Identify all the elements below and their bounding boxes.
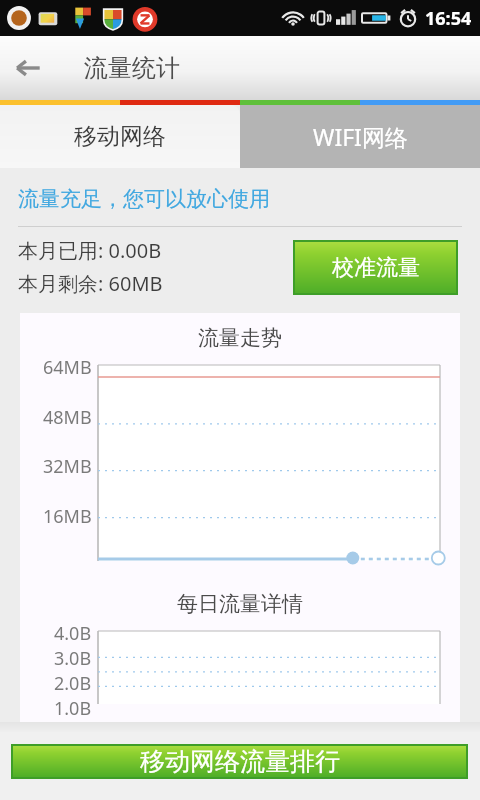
button[interactable]: 校准流量 [295,242,456,293]
staticText: 校准流量 [332,254,420,282]
staticText: 流量充足，您可以放心使用 [18,186,270,212]
button[interactable]: WIFI网络 [240,105,480,168]
staticText: 流量走势 [198,325,282,351]
staticText: 2.0B [54,671,92,696]
staticText: 64MB [43,355,92,380]
staticText: 本月已用: 0.00B [18,237,162,264]
staticText: 移动网络 [74,122,166,151]
button[interactable]: 移动网络流量排行 [13,746,466,777]
staticText: 1.0B [54,696,92,721]
staticText: 4.0B [54,621,92,646]
staticText: 16:54 [425,6,472,31]
staticText: 流量统计 [84,53,180,83]
staticText: 移动网络流量排行 [140,746,340,777]
button[interactable]: Back [0,40,56,96]
staticText: 3.0B [54,646,92,671]
staticText: 本月剩余: 60MB [18,270,163,297]
button[interactable]: 移动网络 [0,105,240,168]
staticText: WIFI网络 [313,121,408,152]
staticText: 16MB [43,504,92,529]
staticText: 32MB [43,454,92,479]
staticText: 每日流量详情 [177,591,303,617]
staticText: 48MB [43,405,92,430]
